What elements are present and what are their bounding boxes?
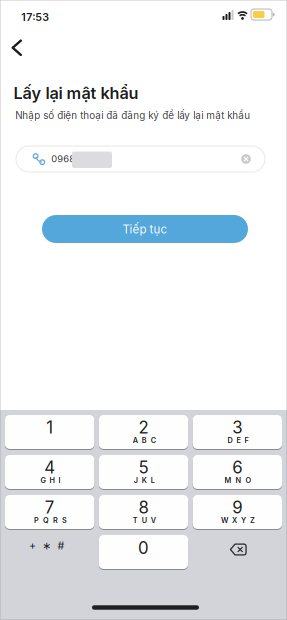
- button[interactable]: 9: [193, 495, 282, 530]
- button[interactable]: 7: [5, 495, 94, 530]
- staticText: 9: [232, 497, 242, 517]
- staticText: Tiếp tục: [122, 222, 167, 236]
- button[interactable]: 3: [193, 415, 282, 450]
- button[interactable]: 4: [5, 455, 94, 490]
- staticText: 17:53: [21, 10, 49, 23]
- staticText: 3: [232, 417, 242, 437]
- staticText: 8: [138, 497, 148, 517]
- staticText: J K L: [134, 476, 155, 485]
- staticText: Lấy lại mật khẩu: [14, 83, 139, 103]
- staticText: A B C: [133, 436, 156, 445]
- button[interactable]: Tiếp tục: [42, 215, 248, 243]
- staticText: 5: [138, 457, 148, 477]
- button[interactable]: 8: [99, 495, 188, 530]
- staticText: 7: [45, 497, 55, 517]
- staticText: G H I: [40, 476, 60, 485]
- staticText: D E F: [228, 436, 249, 445]
- button[interactable]: 6: [193, 455, 282, 490]
- staticText: 4: [44, 457, 55, 477]
- staticText: Nhập số điện thoại đã đăng ký để lấy lại…: [15, 109, 250, 121]
- button[interactable]: + ∗ #: [2, 528, 91, 563]
- staticText: + ∗ #: [29, 539, 64, 552]
- staticText: W X Y Z: [221, 516, 255, 525]
- staticText: 6: [232, 457, 242, 477]
- button[interactable]: Phone number: [16, 146, 265, 172]
- staticText: M N O: [225, 476, 252, 485]
- staticText: T U V: [133, 516, 156, 525]
- staticText: 1: [46, 417, 53, 437]
- button[interactable]: Clear text: [239, 152, 253, 166]
- button[interactable]: 5: [99, 455, 188, 490]
- staticText: 2: [138, 417, 148, 437]
- button[interactable]: 1: [5, 415, 94, 450]
- button[interactable]: 0: [99, 535, 188, 570]
- button[interactable]: Delete: [194, 532, 283, 567]
- staticText: 0: [138, 538, 149, 558]
- staticText: P Q R S: [34, 516, 67, 525]
- staticText: 0968: [51, 153, 75, 165]
- button[interactable]: 2: [99, 415, 188, 450]
- button[interactable]: Back: [6, 36, 30, 58]
